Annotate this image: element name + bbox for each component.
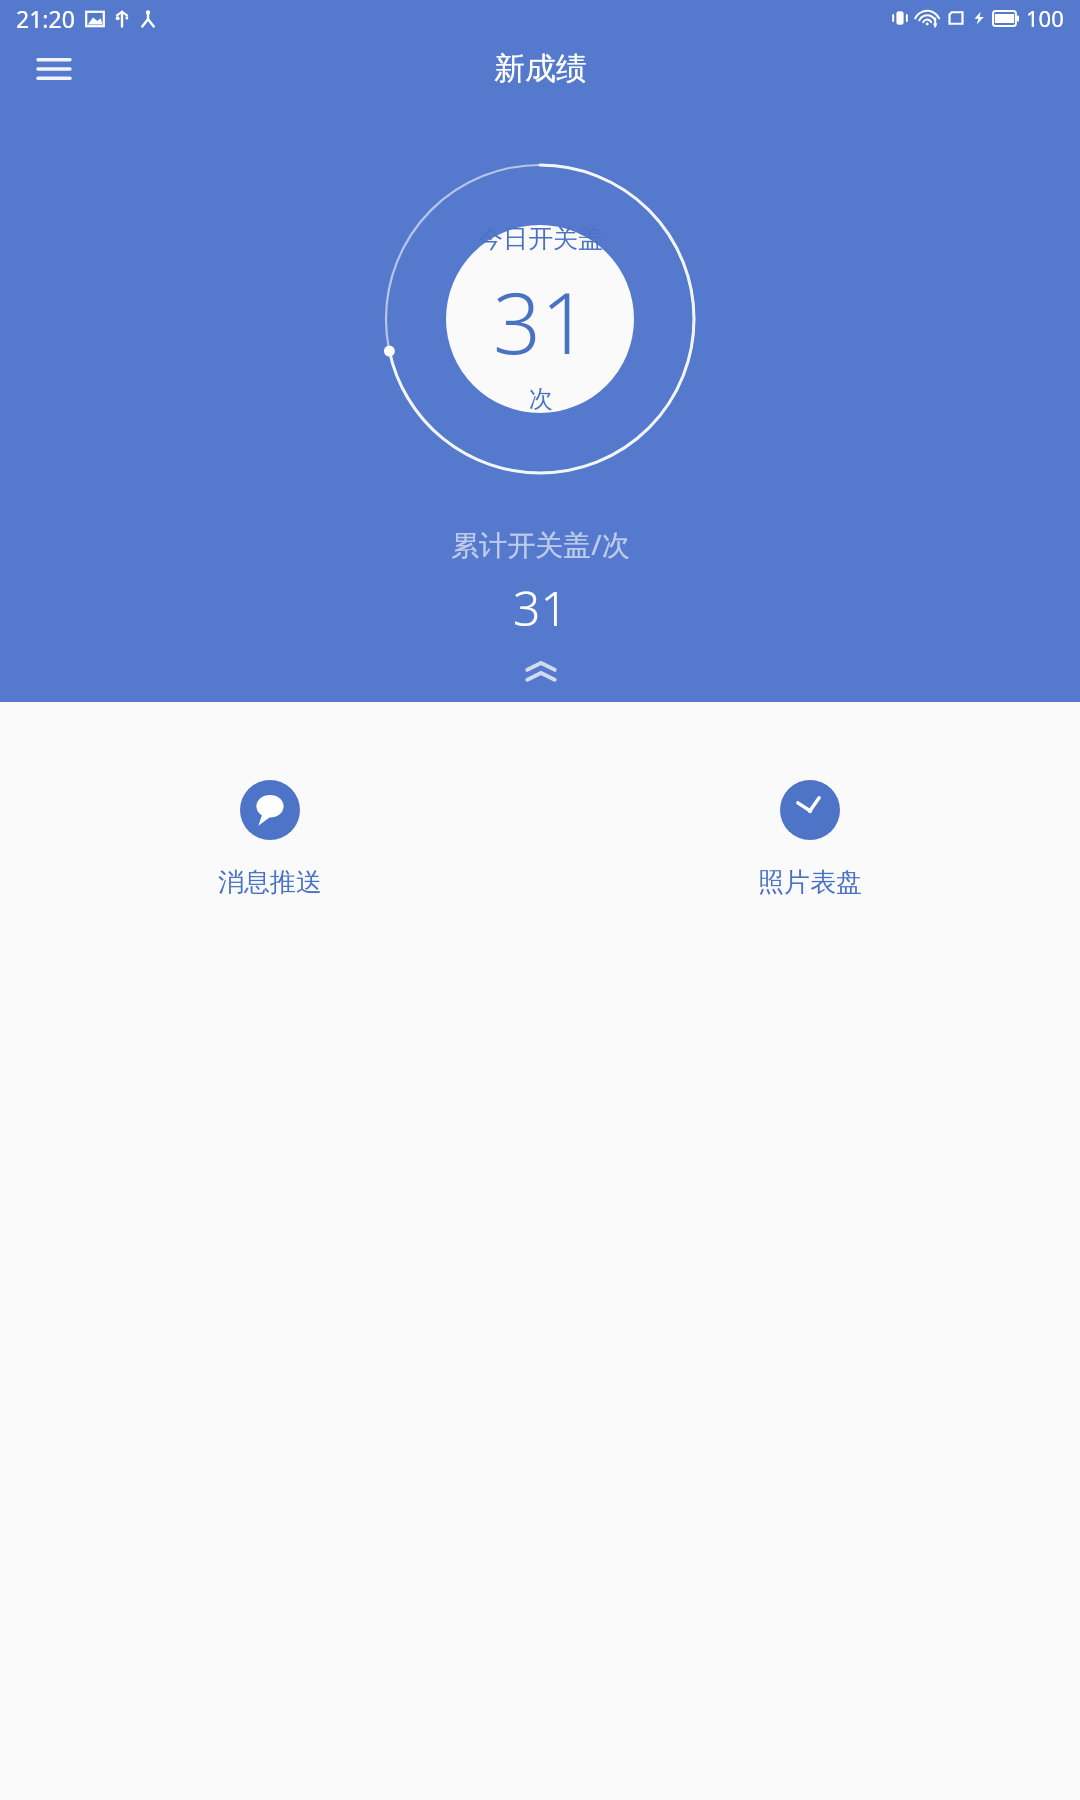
staticText: 新成绩 [494, 49, 587, 88]
button[interactable]: Menu [28, 43, 80, 95]
button[interactable]: 消息推送 [194, 774, 346, 905]
staticText: 21:20 [16, 3, 75, 34]
staticText: 31 [513, 575, 568, 640]
staticText: 消息推送 [218, 866, 322, 899]
button[interactable]: Expand history [514, 648, 568, 702]
staticText: 照片表盘 [758, 866, 862, 899]
staticText: 今日开关盖 [478, 223, 603, 254]
staticText: 100 [1026, 3, 1064, 33]
button[interactable]: 照片表盘 [734, 774, 886, 905]
staticText: 累计开关盖/次 [451, 525, 630, 563]
staticText: 31 [493, 264, 589, 378]
staticText: 次 [529, 384, 553, 414]
